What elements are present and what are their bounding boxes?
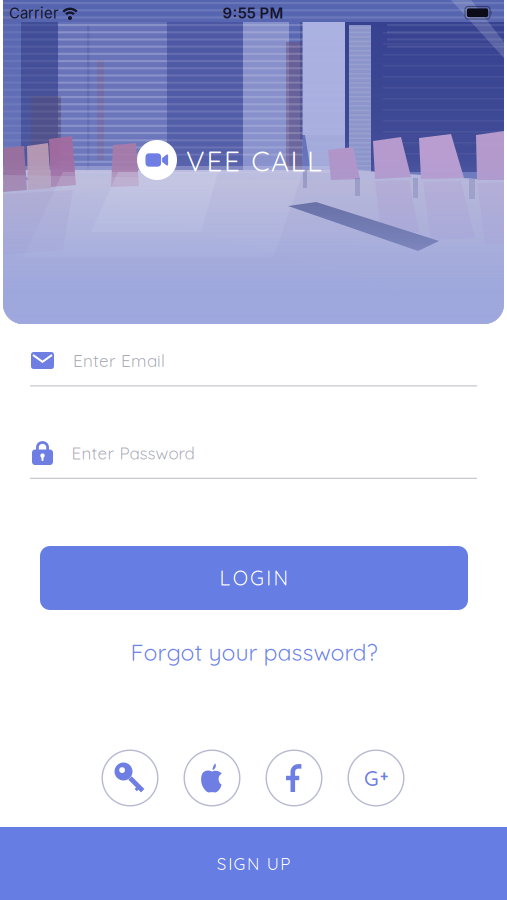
staticText: C xyxy=(251,143,269,178)
staticText: G xyxy=(364,765,379,791)
staticText: G xyxy=(250,565,264,590)
button[interactable]: Enter Email xyxy=(12,338,495,390)
staticText: I xyxy=(266,565,271,590)
staticText: 9:55 PM xyxy=(222,4,283,22)
staticText: L xyxy=(307,143,322,178)
staticText: E xyxy=(224,143,240,178)
button[interactable]: Forgot your password? xyxy=(130,638,377,666)
staticText: I xyxy=(228,853,232,874)
staticText: V xyxy=(186,143,205,178)
staticText: O xyxy=(233,565,248,590)
button[interactable]: Sign in with Facebook xyxy=(265,749,322,806)
staticText xyxy=(242,143,250,178)
button[interactable]: Sign in with Apple xyxy=(183,749,240,806)
staticText: L xyxy=(220,565,231,590)
staticText: G xyxy=(234,853,246,874)
staticText: Carrier xyxy=(9,4,59,22)
staticText: Enter Email xyxy=(73,350,165,371)
staticText: N xyxy=(273,565,288,590)
button[interactable]: S xyxy=(0,827,507,900)
button[interactable]: Sign in with key xyxy=(101,749,158,806)
staticText: U xyxy=(267,853,279,874)
staticText: E xyxy=(206,143,222,178)
button[interactable]: L xyxy=(40,546,468,610)
staticText: L xyxy=(290,143,305,178)
staticText: A xyxy=(271,143,289,178)
staticText: S xyxy=(217,853,227,874)
staticText: P xyxy=(280,853,290,874)
staticText: + xyxy=(380,767,388,785)
button[interactable]: Enter Password xyxy=(12,430,495,482)
button[interactable]: Sign in with Google xyxy=(347,749,404,806)
staticText: Forgot your password? xyxy=(130,638,377,666)
staticText: N xyxy=(247,853,259,874)
staticText: Enter Password xyxy=(71,442,194,464)
